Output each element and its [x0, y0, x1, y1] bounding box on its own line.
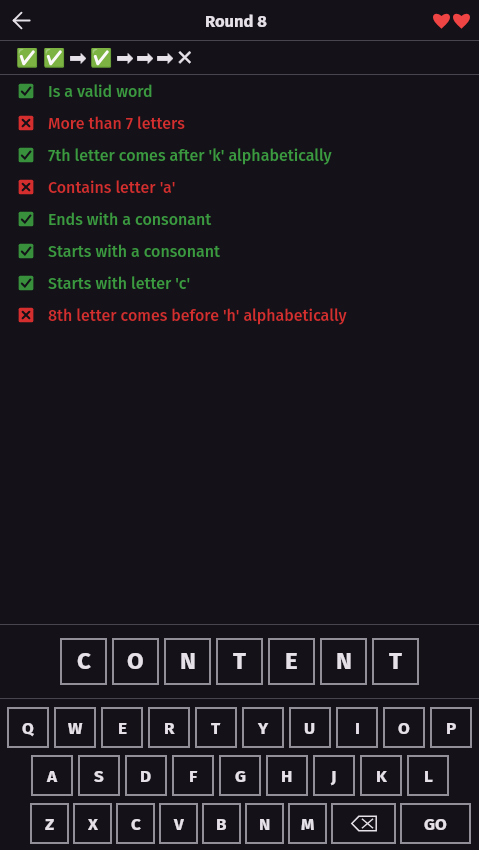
button[interactable]: T — [195, 707, 237, 748]
button[interactable]: C — [116, 803, 155, 844]
staticText: Y — [258, 718, 269, 738]
button[interactable]: E — [268, 638, 315, 685]
button[interactable]: Is a valid word — [18, 75, 479, 107]
button[interactable]: B — [202, 803, 241, 844]
staticText: B — [216, 814, 227, 834]
staticText: ✕ — [176, 46, 194, 70]
staticText: S — [94, 766, 104, 786]
staticText: Q — [22, 718, 34, 738]
button[interactable]: L — [407, 755, 449, 796]
staticText: O — [127, 647, 144, 676]
button[interactable]: Starts with a consonant — [18, 235, 479, 267]
button[interactable]: E — [101, 707, 143, 748]
button[interactable]: D — [125, 755, 167, 796]
staticText: G — [235, 766, 246, 786]
button[interactable]: W — [54, 707, 96, 748]
button[interactable]: N — [164, 638, 211, 685]
button[interactable]: N — [320, 638, 367, 685]
button[interactable]: Ends with a consonant — [18, 203, 479, 235]
staticText: E — [118, 718, 127, 738]
staticText: Ends with a consonant — [48, 210, 212, 229]
button[interactable]: 7th letter comes after 'k' alphabeticall… — [18, 139, 479, 171]
staticText: J — [331, 766, 337, 786]
staticText: W — [68, 718, 83, 738]
button[interactable]: G — [219, 755, 261, 796]
staticText: Starts with a consonant — [48, 242, 221, 261]
staticText: O — [398, 718, 410, 738]
button[interactable]: Starts with letter 'c' — [18, 267, 479, 299]
button[interactable]: I — [336, 707, 378, 748]
button[interactable]: A — [31, 755, 73, 796]
button[interactable]: O — [383, 707, 425, 748]
button[interactable]: J — [313, 755, 355, 796]
staticText: ➡ — [69, 46, 87, 70]
button[interactable]: H — [266, 755, 308, 796]
staticText: 7th letter comes after 'k' alphabeticall… — [48, 146, 332, 165]
staticText: ➡ — [136, 46, 154, 70]
staticText: I — [355, 718, 360, 738]
staticText: More than 7 letters — [48, 114, 185, 133]
staticText: E — [285, 647, 298, 676]
button[interactable]: GO — [400, 803, 471, 844]
button[interactable]: C — [60, 638, 107, 685]
button[interactable]: T — [216, 638, 263, 685]
button[interactable]: S — [78, 755, 120, 796]
staticText: N — [336, 647, 352, 676]
staticText: P — [446, 718, 457, 738]
staticText: A — [47, 766, 58, 786]
staticText: ✅ — [90, 47, 113, 68]
button[interactable]: Backspace — [331, 803, 396, 844]
staticText: M — [301, 814, 315, 834]
staticText: C — [77, 647, 91, 676]
staticText: ✅ — [16, 47, 39, 68]
button[interactable]: More than 7 letters — [18, 107, 479, 139]
button[interactable]: Q — [7, 707, 49, 748]
staticText: GO — [424, 814, 447, 834]
button[interactable]: K — [360, 755, 402, 796]
button[interactable]: M — [288, 803, 327, 844]
staticText: 8th letter comes before 'h' alphabetical… — [48, 306, 347, 325]
staticText: T — [233, 647, 246, 676]
button[interactable]: N — [245, 803, 284, 844]
button[interactable]: Back — [6, 5, 36, 35]
staticText: N — [259, 814, 271, 834]
staticText: Z — [45, 814, 55, 834]
button[interactable]: P — [430, 707, 472, 748]
button[interactable]: X — [73, 803, 112, 844]
button[interactable]: Y — [242, 707, 284, 748]
staticText: X — [88, 814, 98, 834]
staticText: N — [180, 647, 196, 676]
staticText: ➡ — [116, 46, 134, 70]
button[interactable]: Contains letter 'a' — [18, 171, 479, 203]
staticText: H — [281, 766, 293, 786]
staticText: T — [211, 718, 221, 738]
staticText: Starts with letter 'c' — [48, 274, 191, 293]
button[interactable]: F — [172, 755, 214, 796]
staticText: ✅ — [43, 47, 66, 68]
staticText: C — [131, 814, 141, 834]
staticText: Round 8 — [205, 12, 267, 32]
staticText: K — [376, 766, 387, 786]
staticText: Contains letter 'a' — [48, 178, 176, 197]
staticText: V — [174, 814, 184, 834]
button[interactable]: O — [112, 638, 159, 685]
staticText: Is a valid word — [48, 82, 153, 101]
staticText: R — [164, 718, 175, 738]
staticText: ➡ — [156, 46, 174, 70]
button[interactable]: 8th letter comes before 'h' alphabetical… — [18, 299, 479, 331]
staticText: F — [189, 766, 198, 786]
button[interactable]: Z — [30, 803, 69, 844]
staticText: U — [304, 718, 316, 738]
button[interactable]: T — [372, 638, 419, 685]
staticText: L — [424, 766, 433, 786]
button[interactable]: U — [289, 707, 331, 748]
button[interactable]: V — [159, 803, 198, 844]
staticText: T — [389, 647, 402, 676]
button[interactable]: R — [148, 707, 190, 748]
staticText: D — [140, 766, 152, 786]
